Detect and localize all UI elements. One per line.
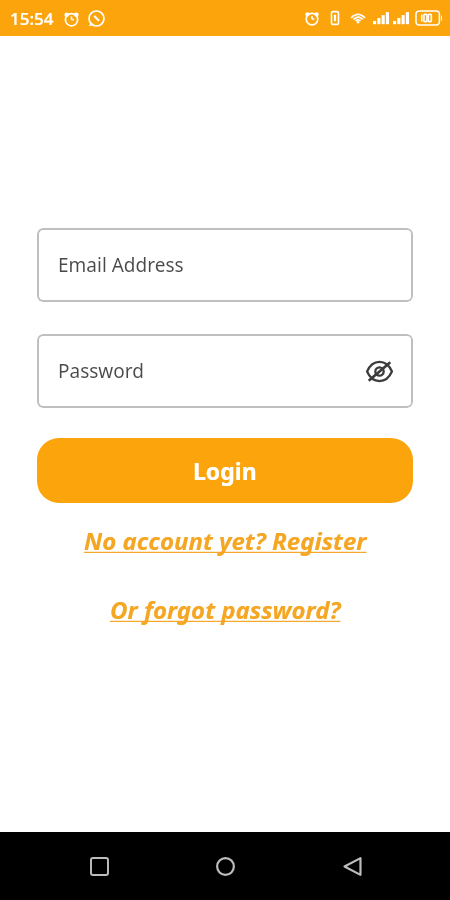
button[interactable]: Recent apps bbox=[71, 838, 127, 894]
button[interactable]: Or forgot password? bbox=[37, 593, 413, 626]
staticText: Email Address bbox=[58, 252, 184, 278]
staticText: Login bbox=[193, 455, 257, 486]
staticText: Password bbox=[58, 358, 144, 384]
button[interactable]: Show password bbox=[359, 351, 399, 391]
staticText: Or forgot password? bbox=[110, 593, 341, 626]
staticText: 15:54 bbox=[10, 7, 54, 30]
button[interactable]: Password bbox=[37, 334, 413, 408]
button[interactable]: Home bbox=[197, 838, 253, 894]
staticText: No account yet? Register bbox=[84, 524, 367, 557]
button[interactable]: No account yet? Register bbox=[37, 524, 413, 557]
button[interactable]: Email Address bbox=[37, 228, 413, 302]
button[interactable]: Back bbox=[324, 838, 380, 894]
button[interactable]: Login bbox=[37, 438, 413, 503]
